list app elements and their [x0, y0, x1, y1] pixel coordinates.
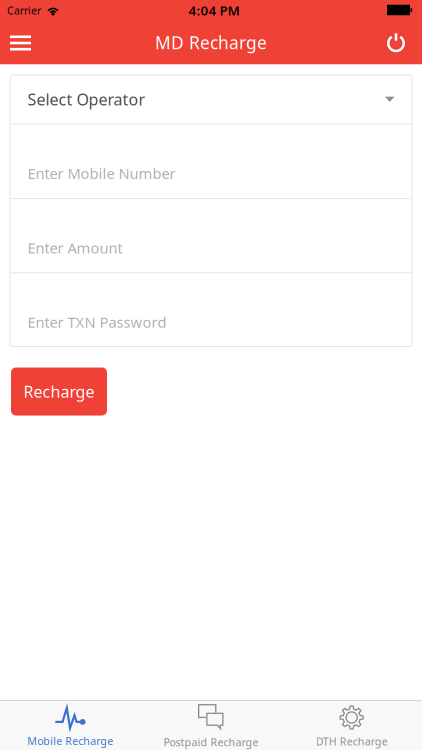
button[interactable]: Log out	[372, 20, 422, 64]
staticText: Mobile Recharge	[27, 734, 113, 748]
staticText: Recharge	[23, 381, 94, 402]
staticText: MD Recharge	[155, 31, 267, 54]
staticText: Carrier	[7, 3, 41, 17]
button[interactable]: Recharge	[11, 367, 107, 415]
staticText: Enter TXN Password	[27, 312, 166, 332]
staticText: Enter Amount	[27, 238, 122, 257]
button[interactable]: Select Operator	[10, 75, 412, 123]
button[interactable]: Enter Mobile Number	[10, 124, 412, 198]
button[interactable]: Mobile Recharge	[0, 701, 141, 750]
button[interactable]: Enter TXN Password	[10, 273, 412, 346]
button[interactable]: Postpaid Recharge	[141, 701, 281, 750]
button[interactable]: Menu	[0, 21, 45, 64]
staticText: Select Operator	[27, 89, 145, 110]
staticText: Enter Mobile Number	[27, 163, 175, 183]
staticText: 4:04 PM	[188, 1, 239, 19]
button[interactable]: Enter Amount	[10, 199, 412, 272]
staticText: Postpaid Recharge	[163, 735, 258, 749]
button[interactable]: DTH Recharge	[281, 701, 422, 750]
staticText: DTH Recharge	[316, 734, 388, 748]
